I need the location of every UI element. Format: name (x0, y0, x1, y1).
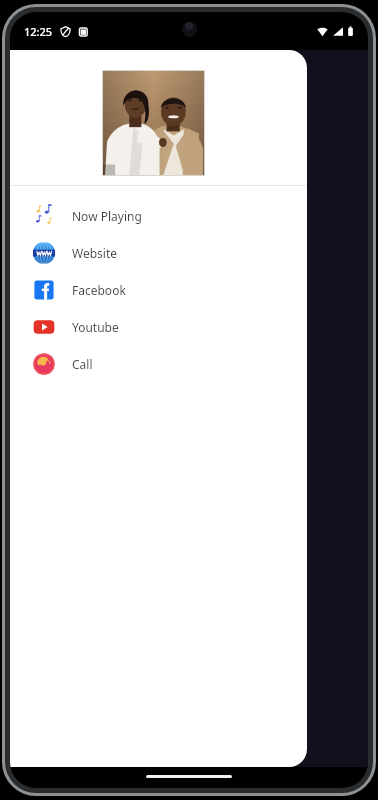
button[interactable]: Facebook (10, 271, 307, 308)
button[interactable]: Website (10, 234, 307, 271)
staticText: Website (72, 245, 118, 261)
staticText: 12:25 (24, 24, 53, 39)
staticText: Call (72, 356, 93, 372)
staticText: Facebook (72, 282, 126, 298)
button[interactable]: Now Playing (10, 197, 307, 234)
button[interactable]: Call (10, 345, 307, 382)
staticText: Youtube (72, 319, 119, 335)
button[interactable]: Youtube (10, 308, 307, 345)
staticText: Now Playing (72, 208, 142, 224)
